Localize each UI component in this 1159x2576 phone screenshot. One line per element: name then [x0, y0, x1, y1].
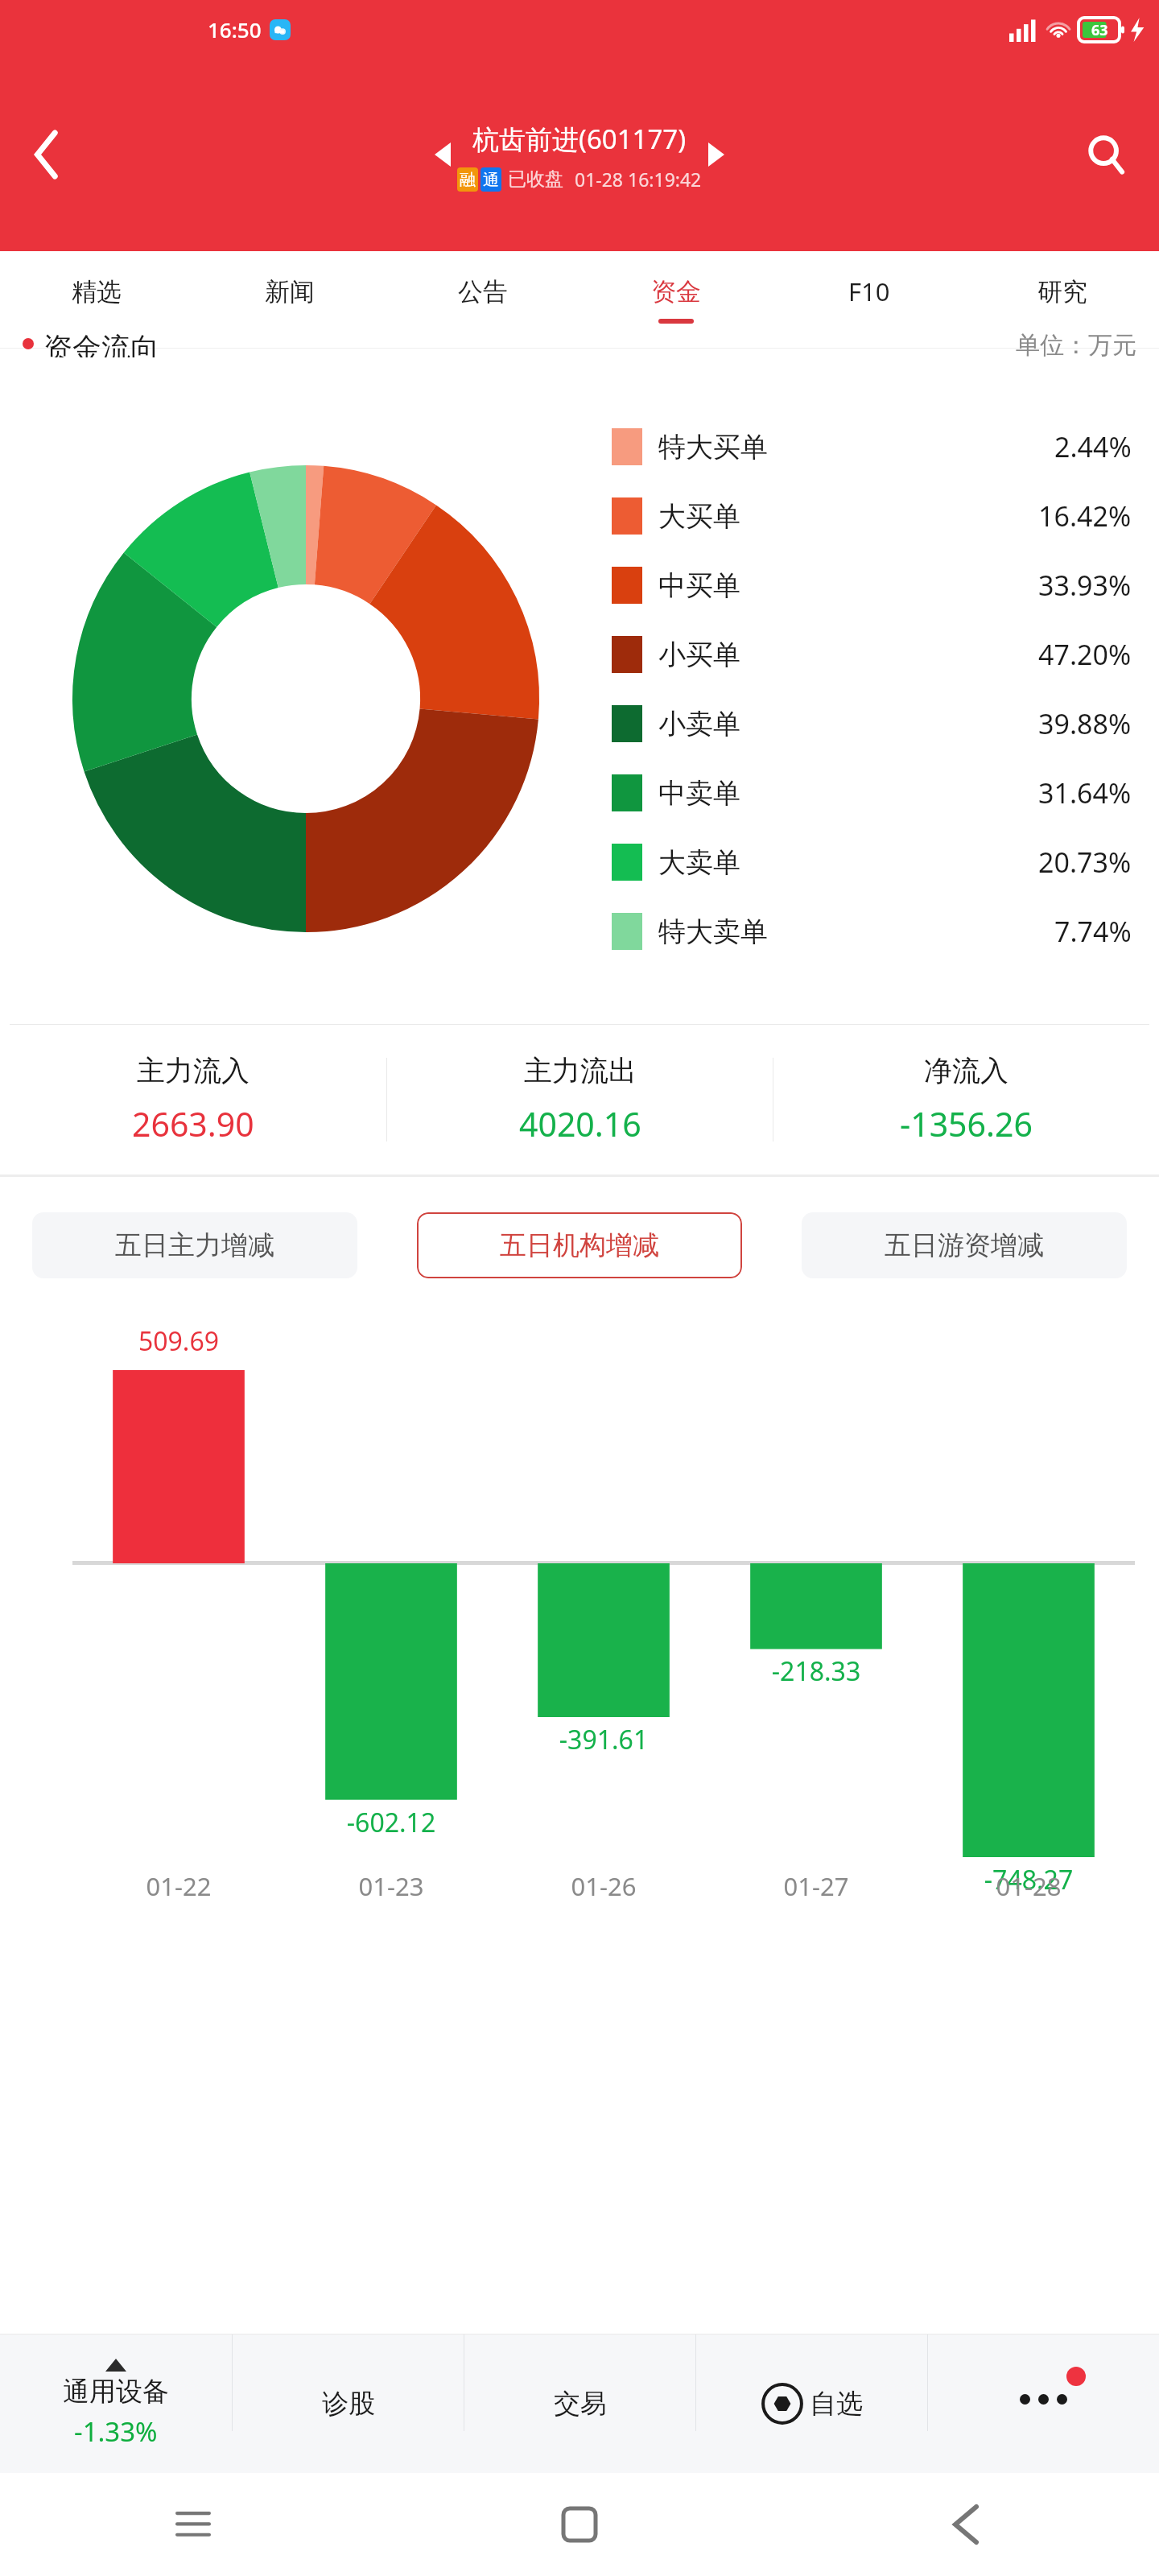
staticText: 4020.16: [519, 1101, 641, 1146]
staticText: 大卖单: [658, 845, 740, 880]
staticText: 16:50: [208, 15, 262, 43]
staticText: 自选: [810, 2387, 863, 2421]
staticText: -1.33%: [74, 2413, 158, 2450]
staticText: 16.42%: [1038, 497, 1132, 535]
button[interactable]: F10: [773, 251, 966, 348]
staticText: 2663.90: [132, 1101, 254, 1146]
button[interactable]: Next stock: [690, 128, 743, 181]
staticText: -218.33: [740, 1653, 893, 1689]
button[interactable]: 研究: [966, 251, 1159, 348]
staticText: 大买单: [658, 499, 740, 534]
button[interactable]: 五日主力增减: [32, 1212, 357, 1278]
staticText: 公告: [458, 276, 508, 308]
staticText: 2.44%: [1054, 428, 1132, 465]
staticText: 01-28: [956, 1869, 1101, 1903]
staticText: 47.20%: [1038, 636, 1132, 673]
button[interactable]: 公告: [386, 251, 579, 348]
button[interactable]: 资金: [579, 251, 773, 348]
button[interactable]: Search: [1074, 122, 1138, 187]
staticText: 33.93%: [1038, 567, 1132, 604]
staticText: 主力流入: [137, 1053, 250, 1088]
button[interactable]: 精选: [0, 251, 193, 348]
staticText: 融: [460, 170, 476, 190]
button[interactable]: 五日机构增减: [417, 1212, 742, 1278]
button[interactable]: 诊股: [233, 2334, 464, 2473]
staticText: 01-28 16:19:42: [575, 167, 702, 192]
staticText: 31.64%: [1038, 774, 1132, 811]
staticText: 五日主力增减: [115, 1228, 274, 1262]
button[interactable]: Back: [16, 124, 77, 185]
button[interactable]: Previous stock: [416, 128, 469, 181]
button[interactable]: 交易: [464, 2334, 695, 2473]
staticText: 7.74%: [1054, 913, 1132, 950]
staticText: 净流入: [924, 1053, 1008, 1088]
button[interactable]: 五日游资增减: [802, 1212, 1127, 1278]
staticText: 01-27: [744, 1869, 889, 1903]
staticText: -602.12: [315, 1805, 468, 1840]
staticText: 通用设备: [63, 2375, 169, 2409]
staticText: 资金: [651, 276, 701, 308]
staticText: 01-23: [319, 1869, 464, 1903]
staticText: -1356.26: [900, 1101, 1033, 1146]
staticText: 中买单: [658, 568, 740, 603]
staticText: 小买单: [658, 638, 740, 672]
staticText: -748.27: [952, 1862, 1105, 1897]
button[interactable]: More options: [928, 2334, 1159, 2473]
staticText: 中卖单: [658, 776, 740, 811]
staticText: -391.61: [527, 1722, 680, 1757]
staticText: 01-26: [531, 1869, 676, 1903]
staticText: 特大买单: [658, 430, 768, 464]
staticText: 五日游资增减: [885, 1228, 1044, 1262]
staticText: 63: [1091, 20, 1108, 40]
staticText: 新闻: [265, 276, 315, 308]
staticText: 已收盘: [508, 167, 563, 191]
staticText: 杭齿前进(601177): [472, 121, 687, 157]
staticText: 小卖单: [658, 707, 740, 741]
button[interactable]: 自选: [696, 2334, 927, 2473]
staticText: 交易: [554, 2387, 607, 2421]
staticText: 39.88%: [1038, 705, 1132, 742]
staticText: 单位：万元: [1016, 330, 1136, 357]
staticText: 精选: [72, 276, 122, 308]
staticText: 诊股: [322, 2387, 375, 2421]
staticText: 主力流出: [524, 1053, 637, 1088]
staticText: 20.73%: [1038, 844, 1132, 881]
staticText: 研究: [1037, 276, 1087, 308]
staticText: 特大卖单: [658, 914, 768, 949]
staticText: 509.69: [102, 1323, 255, 1359]
button[interactable]: 通用设备: [0, 2334, 232, 2473]
button[interactable]: 新闻: [193, 251, 386, 348]
staticText: F10: [848, 275, 890, 308]
staticText: 五日机构增减: [500, 1228, 659, 1262]
staticText: 资金流向: [43, 330, 159, 357]
staticText: 通: [483, 170, 499, 190]
staticText: 01-22: [106, 1869, 251, 1903]
